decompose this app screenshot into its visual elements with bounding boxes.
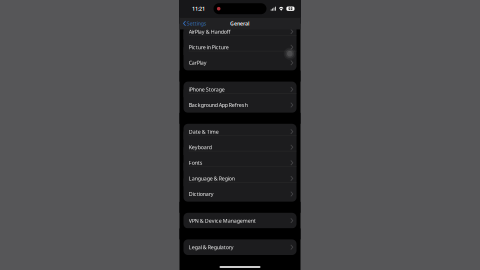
staticText: Dictionary — [189, 190, 214, 198]
button[interactable]: Date & Time — [183, 124, 296, 139]
button[interactable]: Keyboard — [183, 139, 296, 155]
staticText: Legal & Regulatory — [189, 244, 234, 251]
staticText: iPhone Storage — [189, 86, 225, 93]
staticText: Language & Region — [189, 175, 235, 182]
button[interactable]: Legal & Regulatory — [183, 239, 296, 255]
button[interactable]: iPhone Storage — [183, 82, 296, 97]
button[interactable]: Fonts — [183, 155, 296, 171]
staticText: 11:21 — [192, 5, 205, 12]
staticText: Fonts — [189, 159, 203, 166]
button[interactable]: Background App Refresh — [183, 97, 296, 113]
staticText: Background App Refresh — [189, 101, 248, 109]
button[interactable]: Picture in Picture — [183, 39, 296, 55]
staticText: General — [230, 20, 250, 27]
button[interactable]: VPN & Device Management — [183, 213, 296, 228]
button[interactable]: Dictionary — [183, 186, 296, 202]
button[interactable]: AirPlay & Handoff — [183, 24, 296, 39]
staticText: Date & Time — [189, 128, 219, 135]
staticText: VPN & Device Management — [189, 217, 256, 224]
staticText: CarPlay — [189, 59, 207, 66]
staticText: Settings — [187, 20, 207, 27]
staticText: AirPlay & Handoff — [189, 28, 231, 35]
button[interactable]: CarPlay — [183, 55, 296, 71]
staticText: Keyboard — [189, 144, 212, 151]
staticText: Picture in Picture — [189, 44, 229, 51]
button[interactable]: Settings — [179, 20, 207, 27]
button[interactable]: Language & Region — [183, 171, 296, 186]
